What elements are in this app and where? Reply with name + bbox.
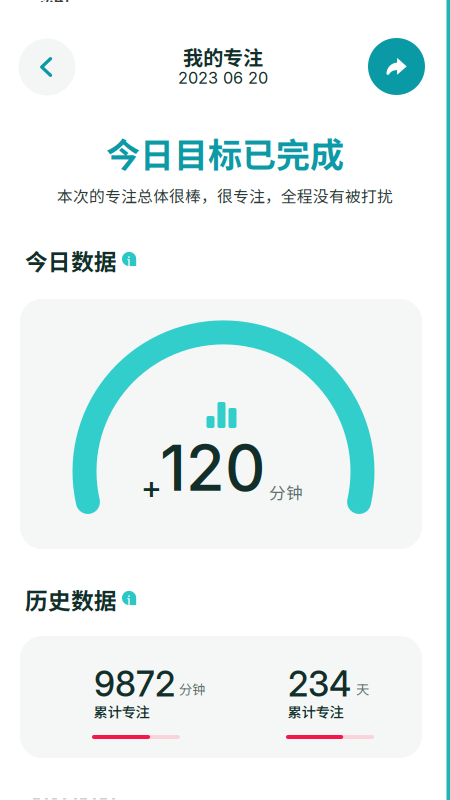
staticText: i — [127, 591, 131, 610]
staticText: 234 — [288, 663, 351, 705]
staticText: 累计专注 — [287, 701, 343, 722]
staticText: 今日目标已完成 — [106, 128, 344, 177]
staticText: 今日数据 — [25, 244, 117, 277]
staticText: i — [127, 252, 131, 271]
staticText: 本次的专注总体很棒，很专注，全程没有被打扰 — [57, 184, 393, 207]
staticText: 9872 — [94, 663, 175, 705]
button[interactable]: Back — [18, 38, 75, 95]
staticText: 累计专注 — [93, 701, 149, 722]
staticText: 我的专注 — [183, 42, 263, 71]
staticText: 120 — [160, 430, 265, 506]
staticText: 历史数据 — [25, 583, 117, 616]
staticText: 分钟 — [269, 480, 303, 504]
staticText: 2023 06 20 — [178, 68, 268, 88]
staticText: + — [141, 468, 162, 507]
staticText: 分钟 — [179, 679, 205, 698]
staticText: 9:41 — [40, 0, 69, 8]
staticText: 天 — [356, 679, 369, 698]
button[interactable]: Share — [368, 38, 425, 95]
